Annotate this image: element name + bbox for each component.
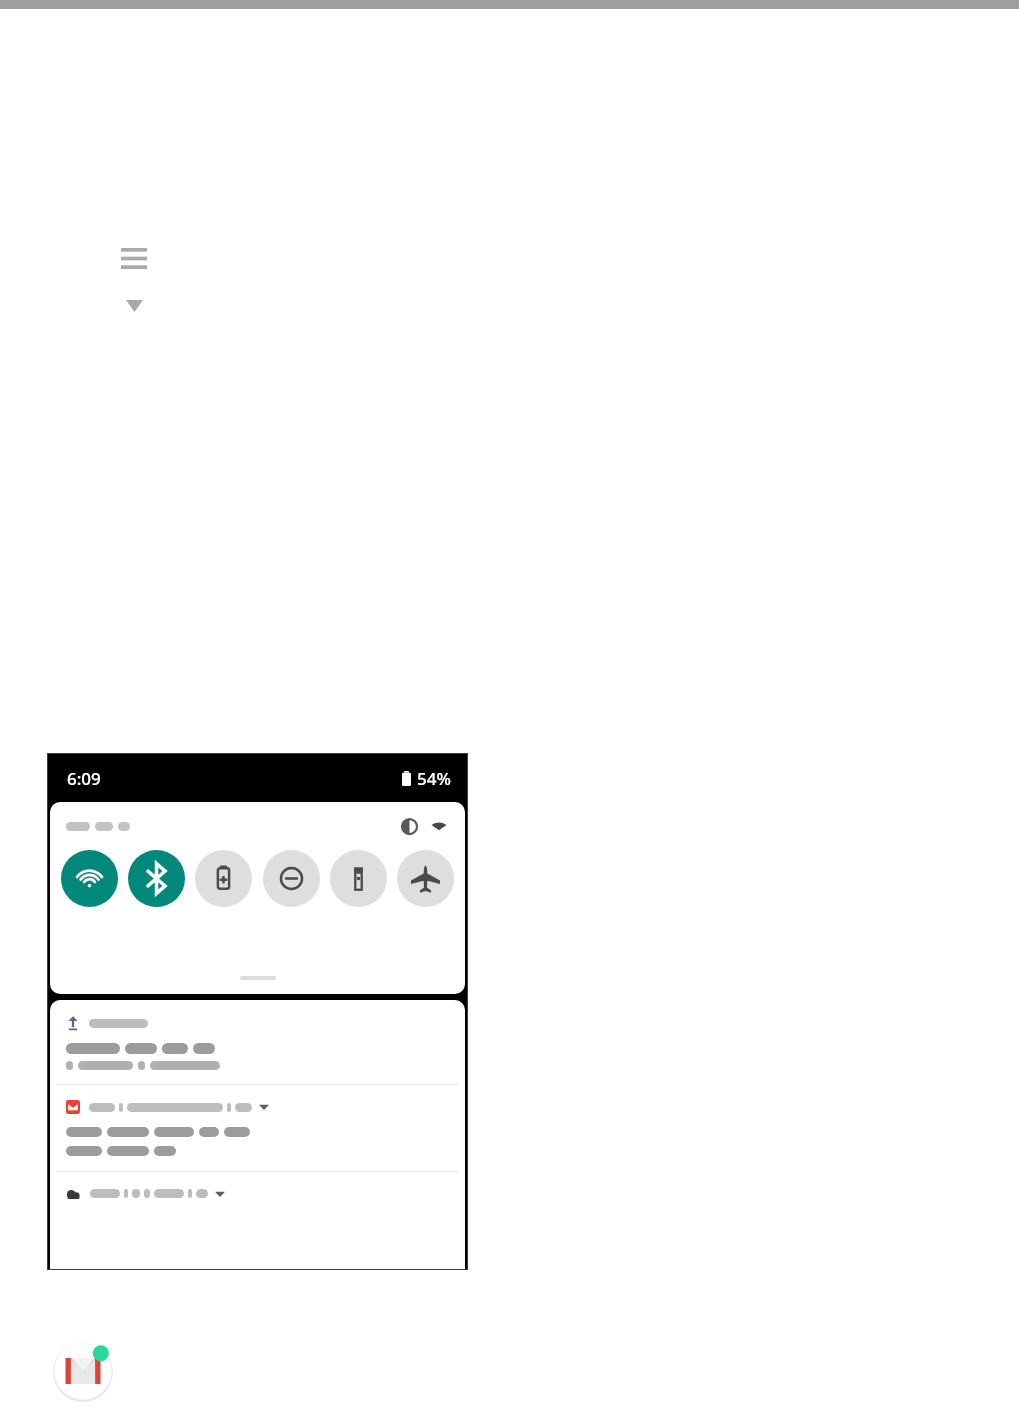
- staticText: 6:09: [67, 767, 101, 790]
- button[interactable]: Flashlight: [330, 850, 387, 907]
- button[interactable]: Do Not Disturb: [263, 850, 320, 907]
- button[interactable]: Bluetooth: [128, 850, 185, 907]
- button[interactable]: Auto brightness: [399, 816, 419, 836]
- button[interactable]: Wi-Fi: [61, 850, 118, 907]
- button[interactable]: Show options: [118, 292, 150, 320]
- button[interactable]: Expand quick settings: [240, 976, 276, 980]
- button[interactable]: Airplane mode: [397, 850, 454, 907]
- staticText: 54%: [417, 767, 451, 790]
- button[interactable]: [50, 1172, 465, 1199]
- button[interactable]: [50, 1085, 465, 1171]
- button[interactable]: Wi-Fi status: [429, 816, 449, 836]
- button[interactable]: Gmail: [48, 1336, 118, 1406]
- button[interactable]: [50, 1000, 465, 1084]
- button[interactable]: Menu: [113, 239, 155, 277]
- button[interactable]: Battery Saver: [195, 850, 252, 907]
